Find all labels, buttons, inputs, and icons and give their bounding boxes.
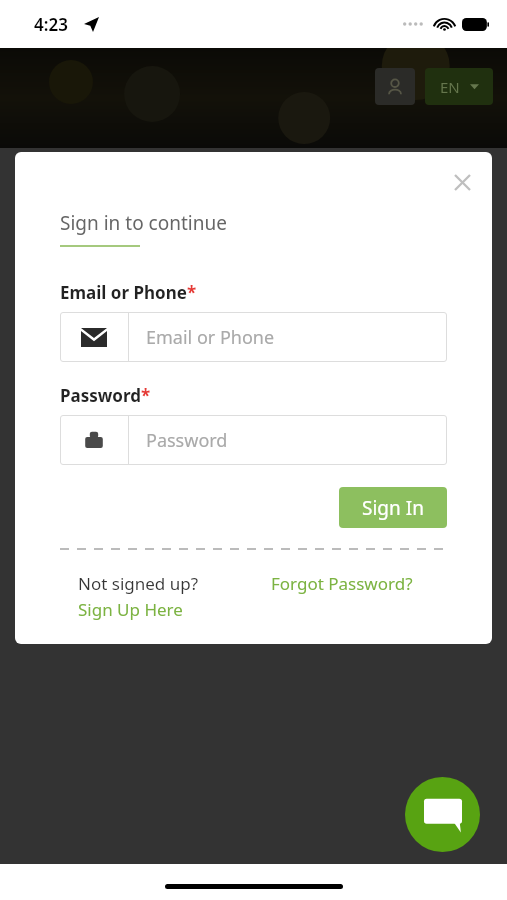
staticText: EN [440,77,460,97]
staticText: Email or Phone [60,281,187,304]
button[interactable]: Not signed up? [78,572,199,621]
button[interactable]: Chat [405,777,480,852]
button[interactable]: Forgot Password? [271,572,413,595]
button[interactable]: Sign In [339,487,447,528]
staticText: Password [146,428,228,453]
staticText: * [141,384,151,407]
staticText: * [187,281,197,304]
staticText: 4:23 [34,13,68,36]
staticText: Not signed up? [78,572,199,595]
button[interactable]: Close [444,164,480,200]
button[interactable]: Password [60,415,447,465]
button[interactable]: Email or Phone [60,312,447,362]
staticText: Sign in to continue [60,210,227,236]
staticText: Sign Up Here [78,598,183,621]
button[interactable]: EN [425,68,493,105]
button[interactable]: Account [375,68,415,105]
staticText: Password [60,384,141,407]
staticText: Email or Phone [146,325,275,350]
staticText: Sign In [362,495,424,521]
